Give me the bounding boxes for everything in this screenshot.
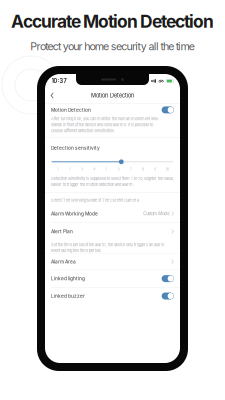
staticText: After turning it on, you can monitor the… (51, 116, 158, 133)
staticText: Motion Detection (91, 92, 134, 99)
staticText: 4 (93, 167, 95, 171)
staticText: 10:37 (51, 78, 66, 84)
staticText: 2 (69, 167, 71, 171)
staticText: Custom Mode (143, 211, 169, 216)
button[interactable]: Linked lighting (45, 270, 180, 287)
button[interactable]: Linked buzzer (45, 287, 180, 304)
staticText: 10 (166, 167, 169, 171)
staticText: 5 (105, 167, 107, 171)
staticText: 1 (57, 167, 58, 171)
staticText: 9 (154, 167, 156, 171)
staticText: Alarm Working Mode (51, 211, 98, 216)
button[interactable]: Motion Detection (45, 103, 180, 116)
staticText: Motion Detection (51, 107, 91, 113)
staticText: 7 (130, 167, 132, 171)
staticText: 3 (81, 167, 83, 171)
button[interactable]: Alarm Working Mode (45, 205, 180, 222)
staticText: Alarm Area (51, 259, 76, 265)
staticText: Detection sensitivity (51, 145, 100, 151)
staticText: Detection sensitivity is supposed to sel… (51, 176, 174, 187)
staticText: Protect your home security all the time (30, 40, 195, 53)
button[interactable]: Back (48, 90, 56, 101)
staticText: Set the time period of the alarm, the de… (51, 242, 165, 253)
staticText: Select The Working Mode of The Current C… (51, 198, 139, 203)
staticText: Accurate Motion Detection (11, 11, 214, 32)
staticText: Alert Plan (51, 229, 73, 234)
button[interactable]: Alarm Area (45, 254, 180, 270)
staticText: 6 (118, 167, 120, 171)
staticText: Linked buzzer (51, 293, 85, 299)
button[interactable]: Alert Plan (45, 223, 180, 240)
staticText: 8 (142, 167, 144, 171)
staticText: Linked lighting (51, 276, 85, 281)
